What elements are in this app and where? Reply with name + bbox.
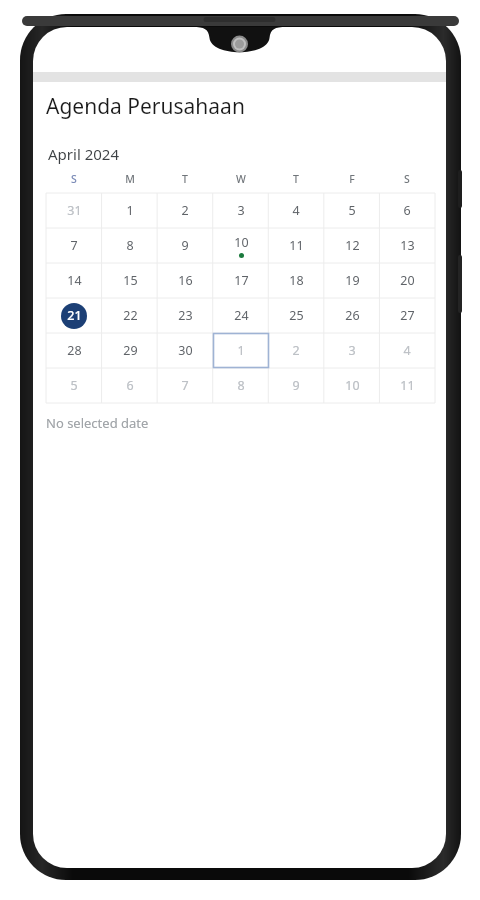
button[interactable]: 6 <box>379 193 435 228</box>
staticText: 11 <box>289 237 304 254</box>
button[interactable]: 10 <box>324 368 380 403</box>
staticText: 3 <box>237 202 245 219</box>
staticText: 9 <box>292 377 300 394</box>
button[interactable]: 8 <box>102 228 158 263</box>
staticText: 2 <box>292 342 300 359</box>
button[interactable]: 19 <box>324 263 380 298</box>
staticText: 12 <box>345 237 360 254</box>
staticText: 29 <box>123 342 138 359</box>
staticText: M <box>125 172 135 186</box>
button[interactable]: 28 <box>46 333 102 368</box>
staticText: 7 <box>70 237 78 254</box>
button[interactable]: 27 <box>379 298 435 333</box>
button[interactable]: 1 <box>102 193 158 228</box>
staticText: S <box>71 172 77 186</box>
staticText: 10 <box>234 234 249 251</box>
staticText: W <box>236 172 246 186</box>
staticText: 13 <box>400 237 415 254</box>
staticText: 4 <box>292 202 300 219</box>
button[interactable]: 2 <box>157 193 213 228</box>
button[interactable]: 11 <box>379 368 435 403</box>
button[interactable]: 7 <box>46 228 102 263</box>
button[interactable]: 6 <box>102 368 158 403</box>
button[interactable]: 4 <box>379 333 435 368</box>
staticText: 18 <box>289 272 304 289</box>
button[interactable]: 30 <box>157 333 213 368</box>
button[interactable]: 31 <box>46 193 102 228</box>
button[interactable]: 9 <box>157 228 213 263</box>
staticText: 20 <box>400 272 415 289</box>
staticText: 10 <box>345 377 360 394</box>
button[interactable]: 20 <box>379 263 435 298</box>
staticText: 5 <box>70 377 78 394</box>
staticText: 16 <box>178 272 193 289</box>
button[interactable]: 23 <box>157 298 213 333</box>
button[interactable]: 3 <box>324 333 380 368</box>
staticText: 27 <box>400 307 415 324</box>
button[interactable]: 3 <box>213 193 269 228</box>
staticText: 31 <box>67 202 82 219</box>
staticText: 21 <box>67 307 82 324</box>
staticText: 1 <box>126 202 134 219</box>
staticText: S <box>404 172 410 186</box>
staticText: 8 <box>126 237 134 254</box>
staticText: 17 <box>234 272 249 289</box>
button[interactable]: 5 <box>324 193 380 228</box>
staticText: 22 <box>123 307 138 324</box>
button[interactable]: 21 <box>46 298 102 333</box>
staticText: 24 <box>234 307 249 324</box>
button[interactable]: 12 <box>324 228 380 263</box>
staticText: 28 <box>67 342 82 359</box>
staticText: T <box>182 172 188 186</box>
staticText: F <box>349 172 355 186</box>
staticText: 8 <box>237 377 245 394</box>
staticText: 14 <box>67 272 82 289</box>
button[interactable]: 9 <box>268 368 324 403</box>
button[interactable]: 11 <box>268 228 324 263</box>
button[interactable]: 22 <box>102 298 158 333</box>
staticText: 26 <box>345 307 360 324</box>
button[interactable]: 18 <box>268 263 324 298</box>
staticText: No selected date <box>46 414 149 432</box>
staticText: 11 <box>400 377 415 394</box>
staticText: 4 <box>403 342 411 359</box>
staticText: 25 <box>289 307 304 324</box>
staticText: T <box>293 172 299 186</box>
button[interactable]: 17 <box>213 263 269 298</box>
button[interactable]: 10 <box>213 228 269 263</box>
staticText: April 2024 <box>48 144 119 164</box>
button[interactable]: 13 <box>379 228 435 263</box>
button[interactable]: 29 <box>102 333 158 368</box>
staticText: 2 <box>181 202 189 219</box>
staticText: 9 <box>181 237 189 254</box>
button[interactable]: 5 <box>46 368 102 403</box>
staticText: 6 <box>126 377 134 394</box>
button[interactable]: 7 <box>157 368 213 403</box>
button[interactable]: 24 <box>213 298 269 333</box>
button[interactable]: 16 <box>157 263 213 298</box>
button[interactable]: 8 <box>213 368 269 403</box>
button[interactable]: 14 <box>46 263 102 298</box>
button[interactable]: 2 <box>268 333 324 368</box>
staticText: Agenda Perusahaan <box>46 92 245 121</box>
staticText: 15 <box>123 272 138 289</box>
button[interactable]: 4 <box>268 193 324 228</box>
staticText: 3 <box>348 342 356 359</box>
staticText: 30 <box>178 342 193 359</box>
staticText: 19 <box>345 272 360 289</box>
button[interactable]: 25 <box>268 298 324 333</box>
staticText: 7 <box>181 377 189 394</box>
button[interactable]: 1 <box>213 333 269 368</box>
button[interactable]: 15 <box>102 263 158 298</box>
button[interactable]: 26 <box>324 298 380 333</box>
staticText: 5 <box>348 202 356 219</box>
staticText: 1 <box>237 342 245 359</box>
staticText: 6 <box>403 202 411 219</box>
staticText: 23 <box>178 307 193 324</box>
